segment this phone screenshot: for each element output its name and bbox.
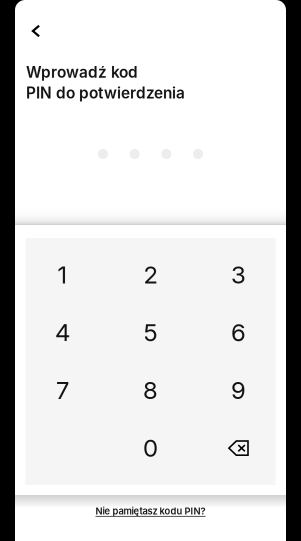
- button[interactable]: 2: [106, 246, 194, 304]
- staticText: 6: [231, 318, 246, 347]
- staticText: 8: [143, 376, 158, 405]
- button[interactable]: 4: [18, 304, 106, 362]
- button[interactable]: 3: [194, 246, 282, 304]
- staticText: 1: [57, 260, 67, 289]
- staticText: 0: [143, 434, 158, 463]
- staticText: Wprowadź kod PIN do potwierdzenia: [26, 63, 185, 102]
- button[interactable]: 8: [106, 361, 194, 419]
- staticText: 4: [55, 318, 70, 347]
- button[interactable]: 1: [18, 246, 106, 304]
- button[interactable]: 6: [194, 304, 282, 362]
- staticText: 9: [231, 376, 246, 405]
- staticText: 3: [231, 260, 246, 289]
- button[interactable]: 7: [18, 361, 106, 419]
- button[interactable]: Nie pamiętasz kodu PIN?: [70, 504, 230, 518]
- button[interactable]: Delete: [194, 419, 282, 477]
- button[interactable]: 0: [106, 419, 194, 477]
- button[interactable]: 9: [194, 361, 282, 419]
- staticText: Nie pamiętasz kodu PIN?: [95, 505, 205, 517]
- button[interactable]: 5: [106, 304, 194, 362]
- staticText: 2: [143, 260, 157, 289]
- staticText: 5: [143, 318, 157, 347]
- button[interactable]: Back: [21, 18, 51, 44]
- staticText: 7: [56, 376, 69, 405]
